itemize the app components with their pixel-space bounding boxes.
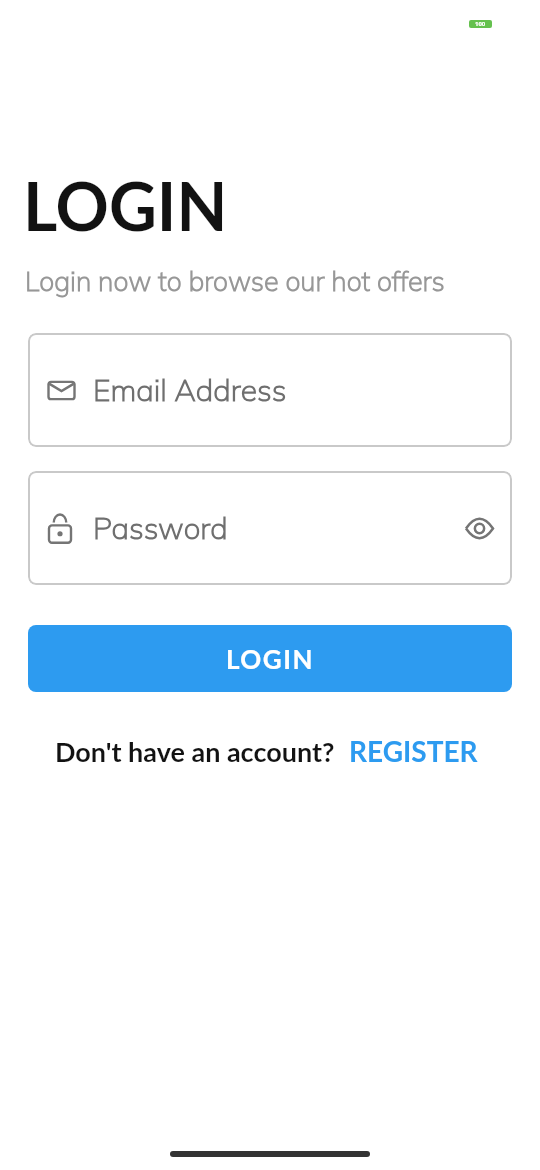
staticText: LOGIN bbox=[23, 166, 228, 245]
staticText: 100 bbox=[475, 20, 486, 28]
staticText: Don't have an account? bbox=[55, 735, 335, 767]
staticText: Password bbox=[93, 509, 228, 547]
staticText: Login now to browse our hot offers bbox=[25, 264, 445, 298]
button[interactable]: Password bbox=[28, 471, 512, 585]
button[interactable]: LOGIN bbox=[28, 625, 512, 692]
staticText: LOGIN bbox=[226, 643, 314, 674]
button[interactable]: REGISTER bbox=[349, 734, 478, 768]
button[interactable]: Email Address bbox=[28, 333, 512, 447]
staticText: Email Address bbox=[93, 371, 287, 409]
